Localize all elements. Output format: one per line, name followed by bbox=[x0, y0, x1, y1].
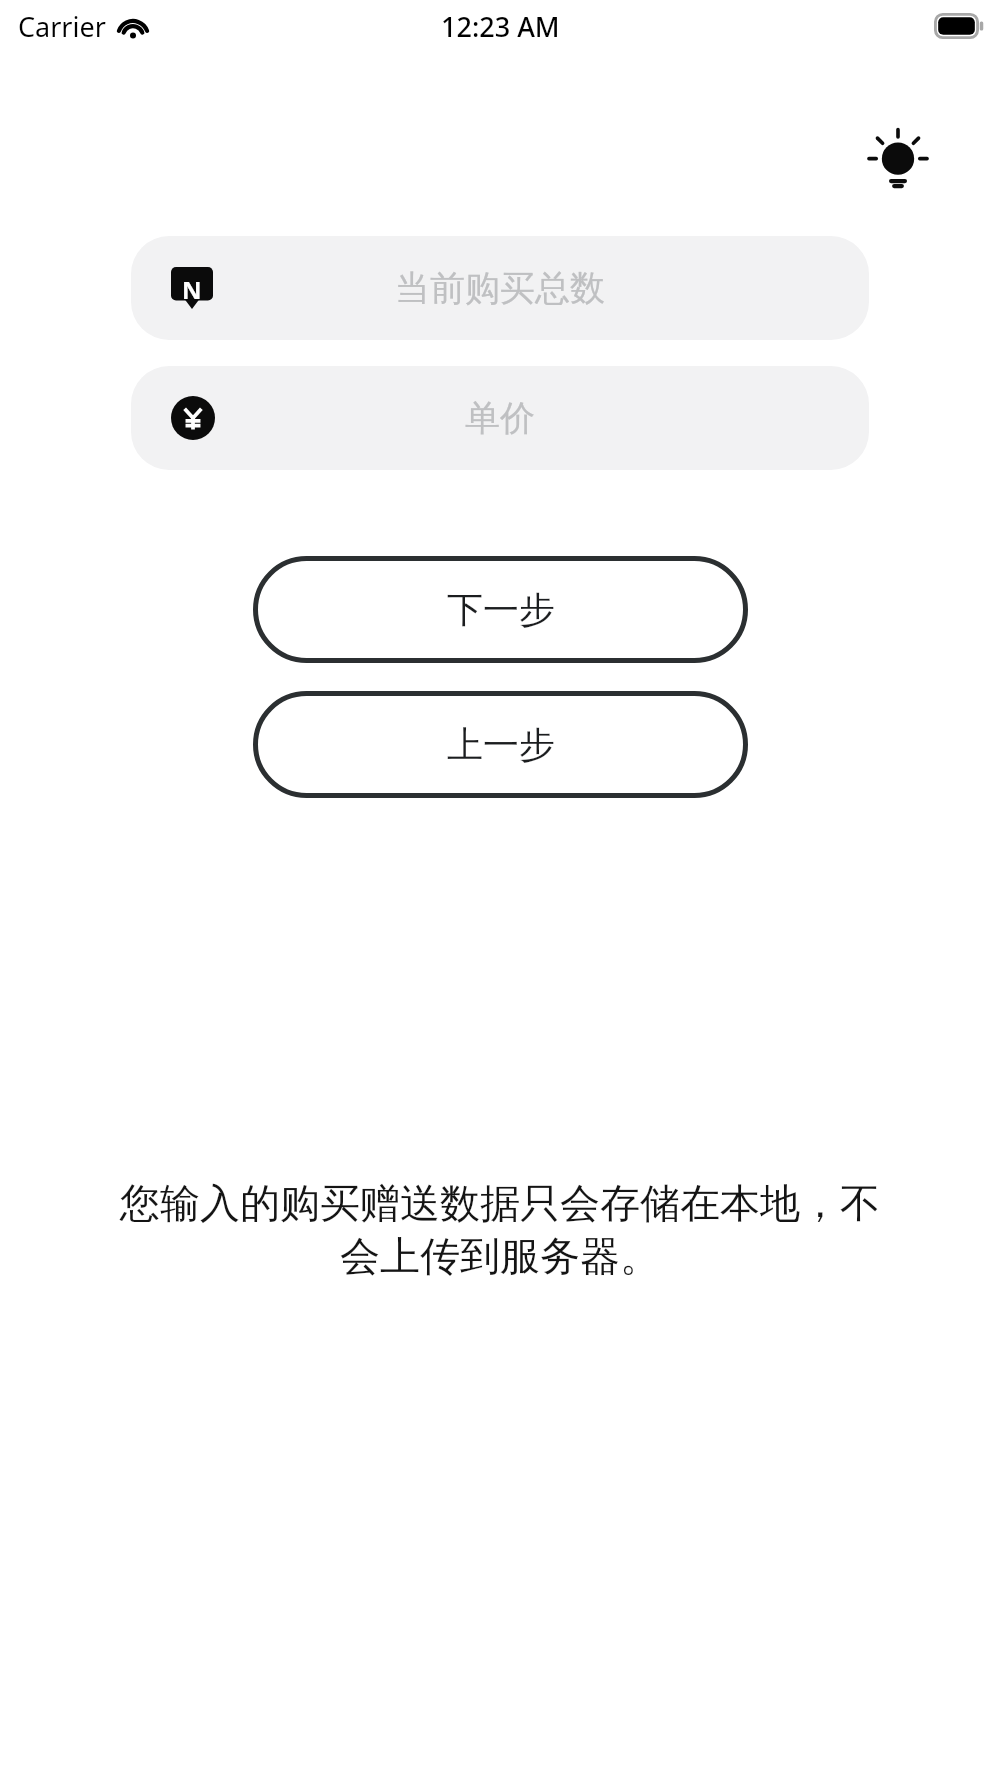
button[interactable]: 上一步 bbox=[253, 691, 748, 798]
button[interactable]: 下一步 bbox=[253, 556, 748, 663]
button[interactable]: N bbox=[131, 236, 869, 340]
staticText: N bbox=[182, 273, 202, 306]
staticText: 下一步 bbox=[447, 587, 555, 632]
button[interactable]: Tips bbox=[862, 124, 934, 196]
staticText: 12:23 AM bbox=[441, 8, 560, 45]
button[interactable]: 单价 bbox=[131, 366, 869, 470]
staticText: 当前购买总数 bbox=[395, 266, 605, 310]
staticText: 您输入的购买赠送数据只会存储在本地，不会上传到服务器。 bbox=[112, 1178, 888, 1282]
staticText: Carrier bbox=[18, 8, 106, 45]
staticText: 上一步 bbox=[447, 722, 555, 767]
staticText: 单价 bbox=[465, 396, 535, 440]
